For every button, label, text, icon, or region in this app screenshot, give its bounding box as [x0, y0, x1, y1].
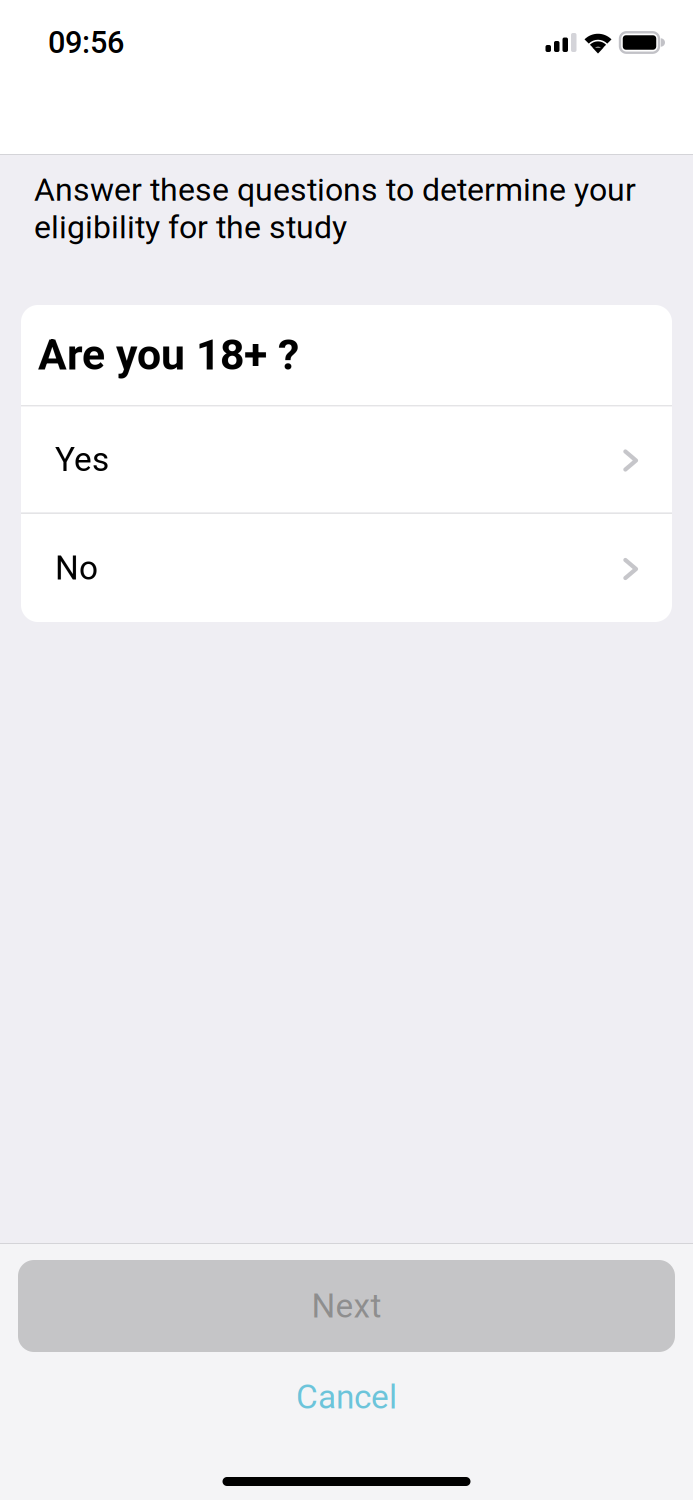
- staticText: Cancel: [296, 1377, 397, 1417]
- staticText: Answer these questions to determine your…: [34, 171, 636, 246]
- button[interactable]: No: [21, 514, 672, 622]
- staticText: Are you 18+ ?: [38, 330, 299, 380]
- button[interactable]: Cancel: [0, 1352, 693, 1442]
- button[interactable]: Yes: [21, 406, 672, 512]
- staticText: Yes: [55, 440, 109, 479]
- staticText: 09:56: [48, 24, 124, 60]
- staticText: Next: [311, 1286, 381, 1326]
- staticText: No: [55, 548, 98, 588]
- button[interactable]: Next: [18, 1260, 675, 1352]
